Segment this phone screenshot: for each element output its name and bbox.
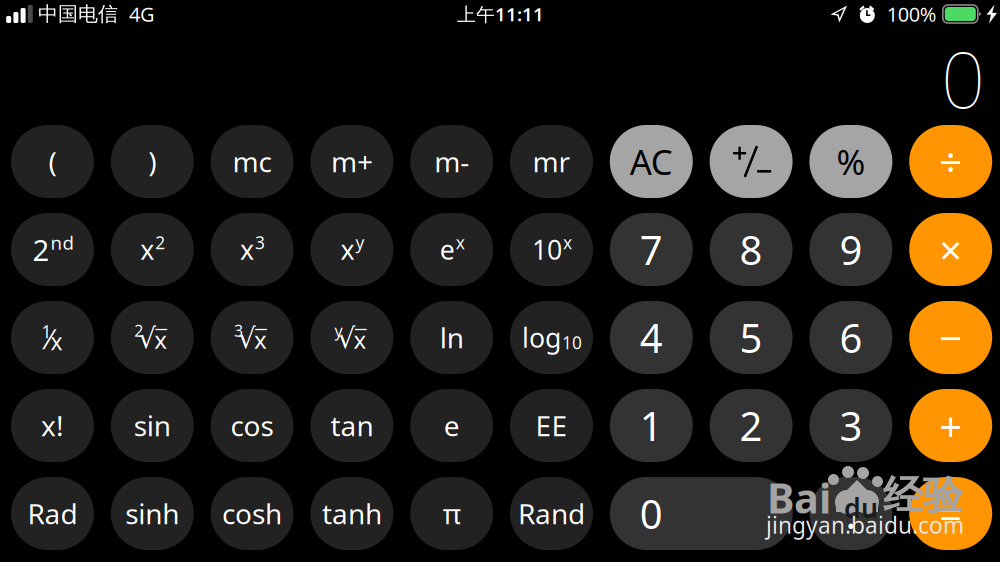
- staticText: m-: [434, 143, 469, 180]
- button[interactable]: 6: [809, 301, 892, 374]
- button[interactable]: +: [909, 389, 992, 462]
- button[interactable]: m+: [310, 125, 393, 198]
- button[interactable]: π: [410, 477, 493, 550]
- staticText: 上午11:11: [457, 2, 544, 26]
- button[interactable]: Root 2: [111, 301, 194, 374]
- staticText: ): [148, 143, 156, 180]
- staticText: cosh: [222, 495, 282, 532]
- button[interactable]: ln: [410, 301, 493, 374]
- button[interactable]: 4: [610, 301, 693, 374]
- staticText: Bai: [767, 470, 831, 525]
- staticText: .: [845, 487, 856, 540]
- button[interactable]: sinh: [111, 477, 194, 550]
- button[interactable]: e: [410, 213, 493, 286]
- staticText: x: [154, 324, 167, 355]
- staticText: x: [340, 232, 354, 267]
- button[interactable]: m-: [410, 125, 493, 198]
- staticText: 4G: [129, 1, 155, 27]
- button[interactable]: 2: [710, 389, 793, 462]
- button[interactable]: Rand: [510, 477, 593, 550]
- button[interactable]: ÷: [909, 125, 992, 198]
- button[interactable]: %: [809, 125, 892, 198]
- staticText: e: [444, 407, 460, 444]
- button[interactable]: e: [410, 389, 493, 462]
- staticText: 0: [941, 27, 985, 129]
- staticText: x: [50, 326, 62, 356]
- button[interactable]: ×: [909, 213, 992, 286]
- staticText: ⁄: [47, 320, 51, 357]
- button[interactable]: x: [310, 213, 393, 286]
- button[interactable]: ): [111, 125, 194, 198]
- staticText: 0: [640, 487, 663, 540]
- staticText: 2: [740, 399, 763, 452]
- button[interactable]: EE: [510, 389, 593, 462]
- staticText: +: [939, 399, 962, 452]
- staticText: 100%: [887, 1, 937, 27]
- button[interactable]: One over x: [11, 301, 94, 374]
- staticText: x: [140, 232, 154, 267]
- staticText: 1: [41, 320, 51, 343]
- staticText: 经验: [883, 471, 963, 520]
- staticText: π: [443, 495, 461, 532]
- button[interactable]: 0: [610, 477, 793, 550]
- staticText: cos: [231, 407, 274, 444]
- staticText: (: [48, 143, 56, 180]
- staticText: x: [254, 324, 267, 355]
- staticText: Rad: [27, 495, 77, 532]
- button[interactable]: AC: [610, 125, 693, 198]
- staticText: x!: [41, 407, 64, 444]
- button[interactable]: 1: [610, 389, 693, 462]
- button[interactable]: cos: [211, 389, 294, 462]
- staticText: 3: [234, 320, 243, 341]
- staticText: EE: [535, 407, 567, 444]
- staticText: x: [353, 324, 366, 355]
- button[interactable]: .: [809, 477, 892, 550]
- button[interactable]: mr: [510, 125, 593, 198]
- staticText: y: [355, 231, 364, 254]
- button[interactable]: −: [909, 301, 992, 374]
- button[interactable]: 2: [11, 213, 94, 286]
- button[interactable]: Root y: [310, 301, 393, 374]
- button[interactable]: x: [111, 213, 194, 286]
- button[interactable]: =: [909, 477, 992, 550]
- button[interactable]: (: [11, 125, 94, 198]
- staticText: 6: [839, 311, 862, 364]
- button[interactable]: x: [211, 213, 294, 286]
- staticText: tan: [330, 407, 373, 444]
- staticText: 4: [640, 311, 663, 364]
- staticText: ÷: [939, 135, 962, 188]
- button[interactable]: x!: [11, 389, 94, 462]
- staticText: mr: [532, 143, 570, 180]
- staticText: mc: [233, 143, 272, 180]
- staticText: tanh: [322, 495, 382, 532]
- staticText: 7: [640, 223, 663, 276]
- button[interactable]: Rad: [11, 477, 94, 550]
- staticText: 1: [640, 399, 663, 452]
- staticText: jingyan.baidu.com: [766, 510, 964, 540]
- staticText: ×: [939, 223, 962, 276]
- staticText: 中国电信: [38, 2, 118, 26]
- staticText: √: [238, 323, 256, 354]
- button[interactable]: 7: [610, 213, 693, 286]
- button[interactable]: Plus Minus: [710, 125, 793, 198]
- staticText: AC: [630, 138, 673, 184]
- button[interactable]: 10: [510, 213, 593, 286]
- staticText: −: [939, 311, 962, 364]
- button[interactable]: Root 3: [211, 301, 294, 374]
- button[interactable]: 5: [710, 301, 793, 374]
- button[interactable]: 3: [809, 389, 892, 462]
- staticText: log: [522, 320, 561, 355]
- button[interactable]: sin: [111, 389, 194, 462]
- button[interactable]: 9: [809, 213, 892, 286]
- button[interactable]: tanh: [310, 477, 393, 550]
- staticText: 3: [839, 399, 862, 452]
- button[interactable]: tan: [310, 389, 393, 462]
- button[interactable]: mc: [211, 125, 294, 198]
- button[interactable]: 8: [710, 213, 793, 286]
- button[interactable]: log: [510, 301, 593, 374]
- button[interactable]: cosh: [211, 477, 294, 550]
- staticText: 9: [839, 223, 862, 276]
- staticText: 2: [155, 231, 165, 254]
- staticText: 8: [740, 223, 763, 276]
- staticText: x: [240, 232, 254, 267]
